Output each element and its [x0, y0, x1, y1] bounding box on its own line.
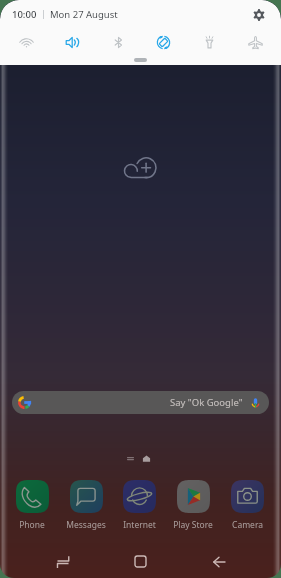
button[interactable]: Recents [45, 544, 80, 578]
button[interactable]: Camera [221, 480, 273, 531]
button[interactable]: Messages [60, 480, 112, 531]
button[interactable]: Phone [6, 480, 58, 531]
staticText: Messages [66, 519, 106, 531]
button[interactable]: Back [201, 544, 236, 578]
button[interactable]: Bluetooth [106, 30, 130, 54]
staticText: Say "Ok Google" [170, 396, 243, 409]
button[interactable]: Wi-Fi [14, 30, 38, 54]
staticText: Internet [123, 519, 156, 531]
button[interactable]: Auto rotate [151, 30, 175, 54]
staticText: Mon 27 August [50, 8, 118, 21]
button[interactable]: Internet [113, 480, 165, 531]
button[interactable]: Home [123, 544, 158, 578]
staticText: Camera [232, 519, 263, 531]
button[interactable]: Airplane mode [243, 30, 267, 54]
staticText: Phone [19, 519, 45, 531]
button[interactable]: Sound [60, 30, 84, 54]
staticText: Play Store [173, 519, 213, 531]
button[interactable]: Play Store [167, 480, 219, 531]
staticText: 10:00 [12, 8, 37, 21]
button[interactable]: Settings [248, 4, 270, 26]
button[interactable] [134, 58, 147, 62]
button[interactable]: Flashlight [197, 30, 221, 54]
button[interactable]: Say "Ok Google" [12, 391, 269, 414]
